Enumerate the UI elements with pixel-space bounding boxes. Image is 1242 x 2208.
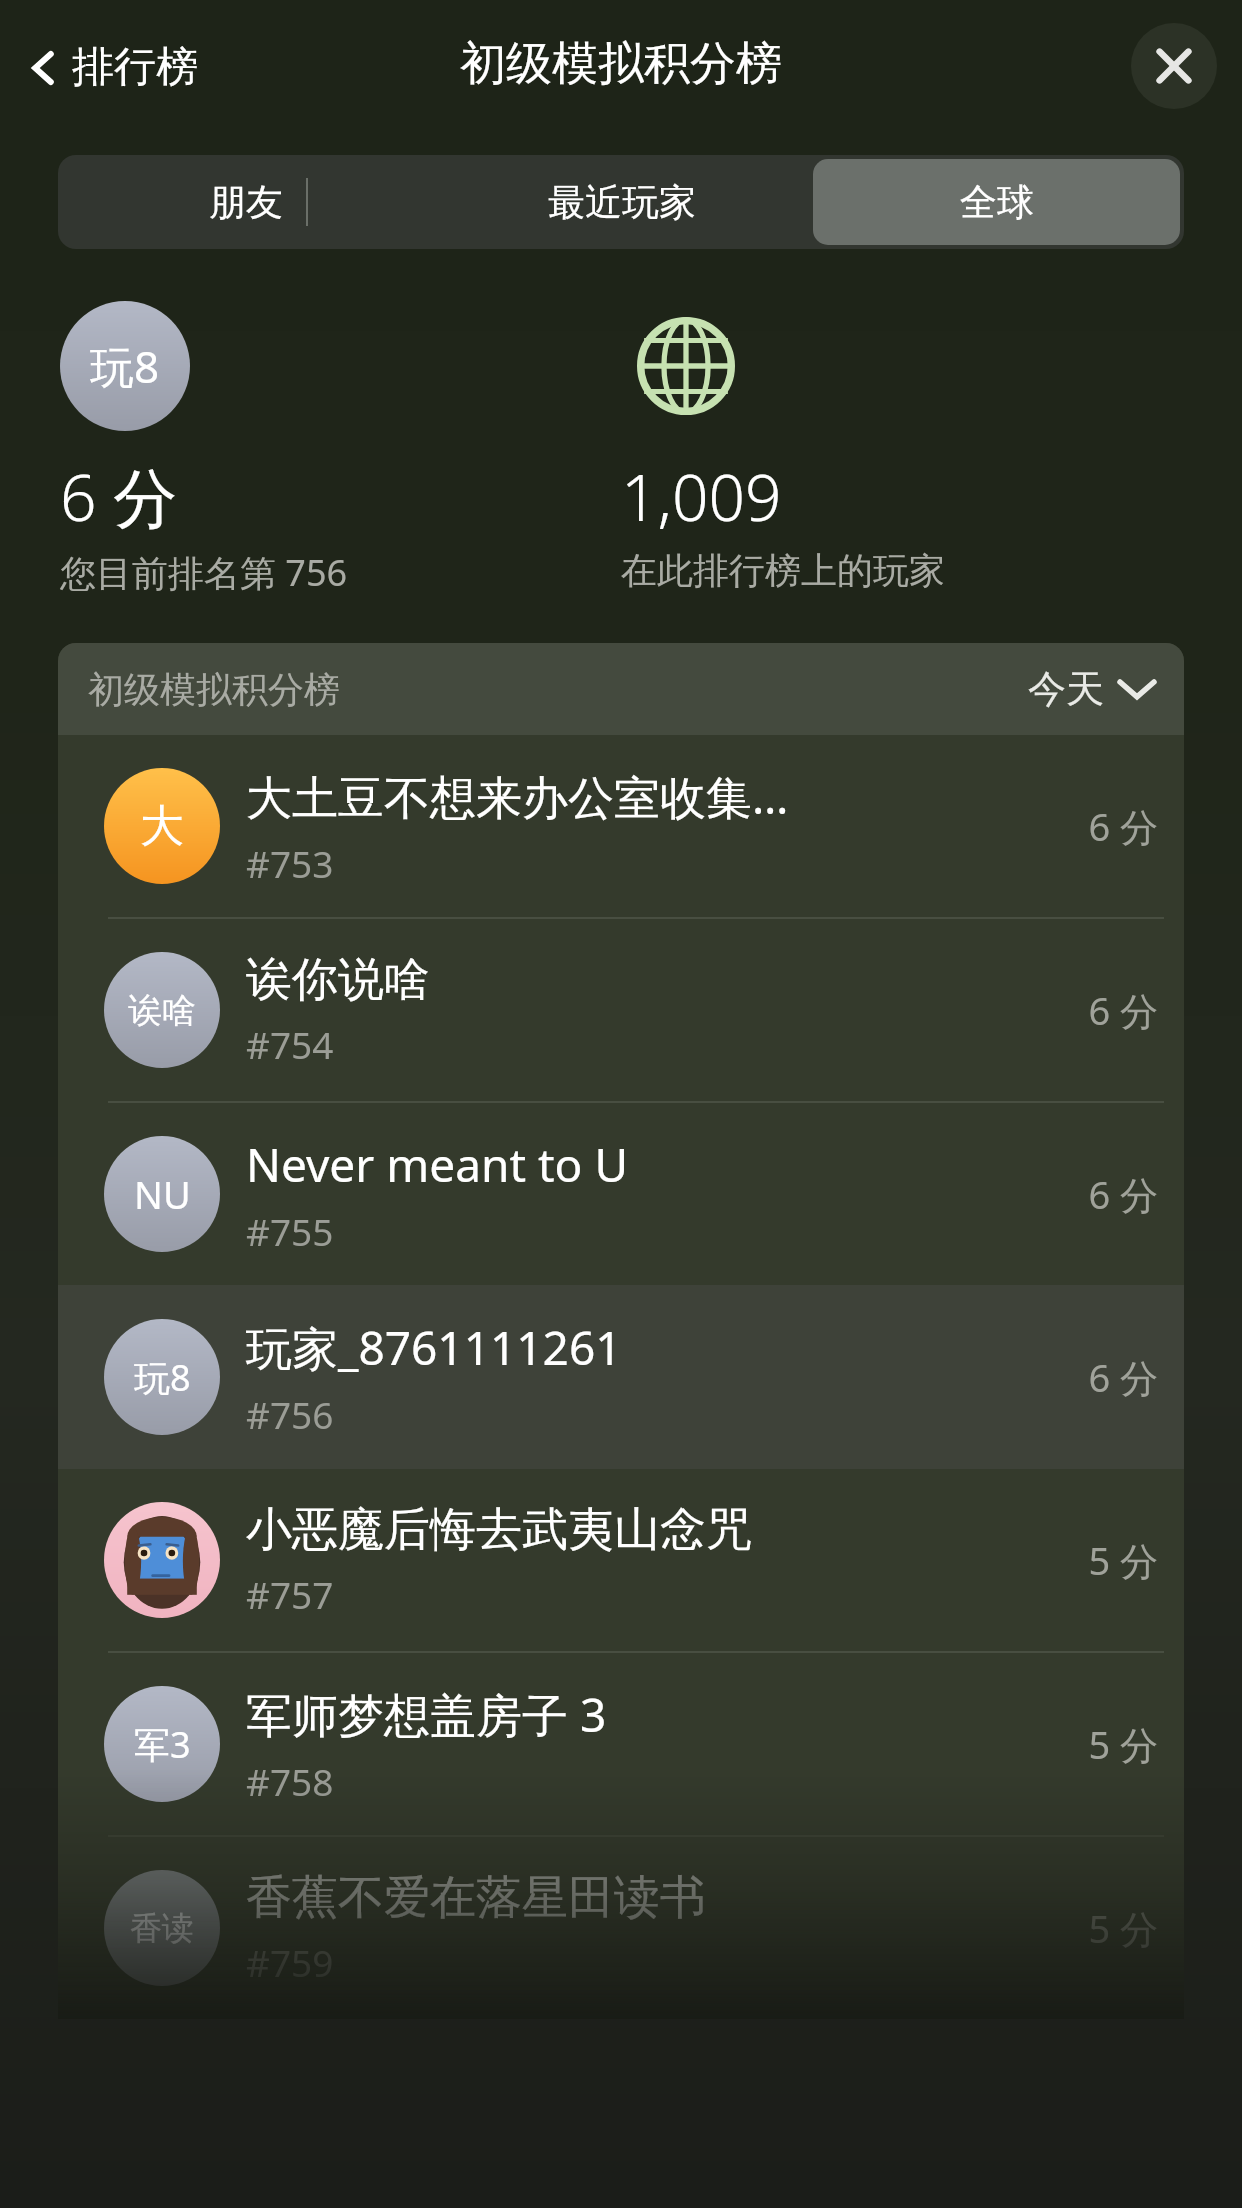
staticText: 玩8 (90, 336, 160, 396)
staticText: 6 分 (1052, 984, 1158, 1036)
button[interactable]: 军3 (58, 1653, 1184, 1835)
staticText: 诶你说啥 (246, 951, 430, 1009)
button[interactable]: 朋友 (62, 159, 430, 245)
staticText: 最近玩家 (548, 179, 696, 226)
staticText: 军3 (134, 1720, 191, 1769)
staticText: 香蕉不爱在落星田读书 (246, 1869, 706, 1927)
staticText: 6 分 (1052, 800, 1158, 852)
staticText: 香读 (130, 1908, 194, 1948)
button[interactable]: 初级模拟积分榜 (58, 643, 1184, 735)
button[interactable]: 全球 (813, 159, 1180, 245)
staticText: NU (134, 1168, 191, 1220)
staticText: 玩8 (134, 1353, 191, 1402)
staticText: 排行榜 (72, 41, 198, 94)
staticText: 诶啥 (128, 989, 196, 1032)
staticText: 在此排行榜上的玩家 (621, 548, 945, 593)
staticText: 6 分 (1052, 1351, 1158, 1403)
button[interactable]: NU (58, 1103, 1184, 1285)
staticText: 您目前排名第 756 (60, 548, 348, 597)
staticText: 初级模拟积分榜 (460, 35, 782, 93)
staticText: 军师梦想盖房子 3 (246, 1683, 607, 1746)
button[interactable]: 最近玩家 (438, 159, 805, 245)
staticText: #754 (246, 1019, 334, 1069)
staticText: 小恶魔后悔去武夷山念咒 (246, 1501, 752, 1559)
staticText: 5 分 (1052, 1902, 1158, 1954)
staticText: 今天 (1028, 665, 1104, 713)
staticText: 1,009 (621, 453, 782, 540)
button[interactable]: 大 (58, 735, 1184, 917)
staticText: #759 (246, 1937, 334, 1987)
staticText: 6 分 (1052, 1168, 1158, 1220)
staticText: Never meant to U (246, 1133, 629, 1196)
button[interactable]: 关闭 (1131, 23, 1217, 109)
staticText: #757 (246, 1569, 334, 1619)
staticText: 6 分 (60, 453, 178, 540)
staticText: 5 分 (1052, 1718, 1158, 1770)
button[interactable]: 排行榜 (20, 31, 206, 104)
staticText: #758 (246, 1756, 334, 1806)
staticText: 初级模拟积分榜 (88, 667, 340, 712)
staticText: #756 (246, 1389, 334, 1439)
staticText: 玩家_8761111261 (246, 1316, 622, 1379)
button[interactable]: 香读 (58, 1837, 1184, 2019)
staticText: #753 (246, 838, 334, 888)
button[interactable]: 小恶魔后悔去武夷山念咒 (58, 1469, 1184, 1651)
staticText: 大 (140, 799, 184, 854)
button[interactable]: 诶啥 (58, 919, 1184, 1101)
staticText: 大土豆不想来办公室收集… (246, 765, 789, 828)
button[interactable]: 玩8 (58, 1285, 1184, 1469)
staticText: #755 (246, 1206, 334, 1256)
staticText: 5 分 (1052, 1534, 1158, 1586)
staticText: 全球 (960, 179, 1034, 226)
staticText: 朋友 (209, 179, 283, 226)
